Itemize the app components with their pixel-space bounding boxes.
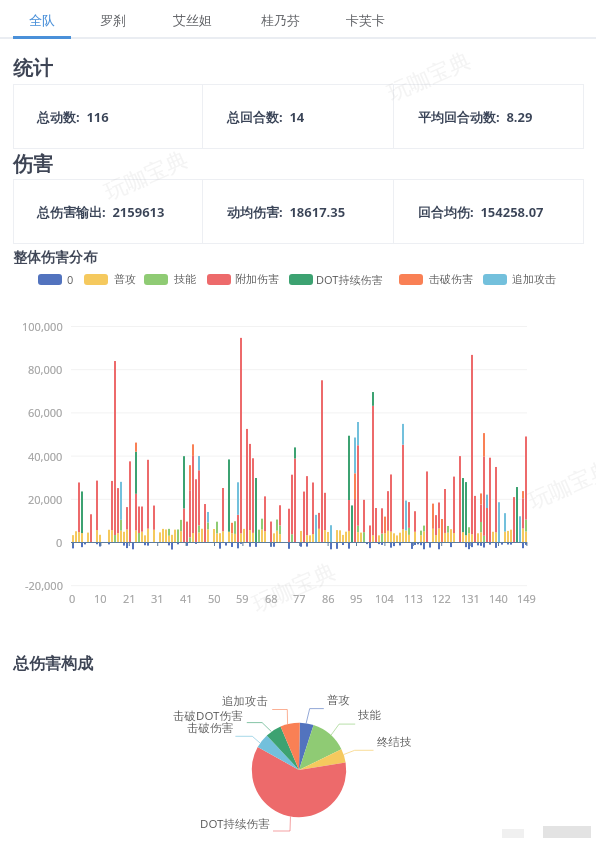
button[interactable]: 普攻 <box>84 271 136 287</box>
staticText: 总回合数: 14 <box>227 108 305 126</box>
staticText: 40,000 <box>28 449 63 464</box>
staticText: 艾丝妲 <box>173 12 212 28</box>
staticText: 追加攻击 <box>512 272 556 286</box>
staticText: 0 <box>56 535 63 550</box>
staticText: 100,000 <box>22 319 63 334</box>
staticText: 50 <box>208 591 221 606</box>
button[interactable]: 总动数: 116 <box>13 84 202 149</box>
staticText: 回合均伤: 154258.07 <box>418 203 544 221</box>
staticText: -20,000 <box>25 578 63 593</box>
staticText: 77 <box>293 591 306 606</box>
button[interactable]: 桂乃芬 <box>249 4 312 36</box>
staticText: 追加攻击 <box>222 694 268 708</box>
staticText: 玩咖宝典 <box>100 145 190 203</box>
staticText: 伤害 <box>13 152 53 177</box>
staticText: 罗刹 <box>100 12 126 28</box>
staticText: 0 <box>67 272 74 287</box>
staticText: 68 <box>265 591 278 606</box>
button[interactable]: 总伤害输出: 2159613 <box>13 179 202 244</box>
staticText: 桂乃芬 <box>261 12 300 28</box>
staticText: 玩咖宝典 <box>383 46 473 104</box>
button[interactable]: 平均回合动数: 8.29 <box>394 84 584 149</box>
staticText: 149 <box>517 591 536 606</box>
staticText: 21 <box>123 591 136 606</box>
staticText: 击破伤害 <box>187 721 233 735</box>
staticText: 整体伤害分布 <box>13 249 97 267</box>
staticText: 附加伤害 <box>235 272 279 286</box>
staticText: DOT持续伤害 <box>200 816 270 832</box>
staticText: 86 <box>322 591 335 606</box>
staticText: 玩咖宝典 <box>248 557 338 615</box>
staticText: 击破DOT伤害 <box>173 708 243 724</box>
staticText: 104 <box>375 591 394 606</box>
staticText: 全队 <box>29 12 55 28</box>
button[interactable]: 技能 <box>144 271 196 287</box>
staticText: 动均伤害: 18617.35 <box>227 203 346 221</box>
staticText: DOT持续伤害 <box>316 272 383 287</box>
button[interactable]: 罗刹 <box>88 4 138 36</box>
staticText: 80,000 <box>28 362 63 377</box>
staticText: 0 <box>69 591 76 606</box>
staticText: 终结技 <box>377 735 412 749</box>
button[interactable]: DOT持续伤害 <box>289 271 383 287</box>
staticText: 卡芙卡 <box>346 12 385 28</box>
staticText: 131 <box>461 591 480 606</box>
staticText: 20,000 <box>28 492 63 507</box>
button[interactable]: 回合均伤: 154258.07 <box>394 179 584 244</box>
staticText: 140 <box>489 591 508 606</box>
staticText: 59 <box>236 591 249 606</box>
staticText: 击破伤害 <box>429 272 473 286</box>
staticText: 60,000 <box>28 405 63 420</box>
staticText: 总动数: 116 <box>37 108 109 126</box>
button[interactable]: 卡芙卡 <box>334 4 397 36</box>
staticText: 普攻 <box>114 272 136 286</box>
button[interactable]: 艾丝妲 <box>161 4 224 36</box>
staticText: 普攻 <box>327 693 350 707</box>
staticText: 95 <box>350 591 363 606</box>
button[interactable]: 击破伤害 <box>399 271 473 287</box>
staticText: 技能 <box>358 708 381 722</box>
button[interactable]: 0 <box>38 271 74 287</box>
staticText: 总伤害构成 <box>13 654 93 674</box>
button[interactable]: 附加伤害 <box>207 271 279 287</box>
button[interactable]: 全队 <box>17 4 67 36</box>
staticText: 统计 <box>13 56 53 81</box>
staticText: 总伤害输出: 2159613 <box>37 203 165 221</box>
button[interactable]: 追加攻击 <box>483 271 556 287</box>
staticText: 平均回合动数: 8.29 <box>418 108 533 126</box>
staticText: 41 <box>180 591 193 606</box>
staticText: 122 <box>432 591 451 606</box>
staticText: 技能 <box>174 272 196 286</box>
staticText: 玩咖宝典 <box>524 454 596 512</box>
staticText: 10 <box>94 591 107 606</box>
button[interactable]: 总回合数: 14 <box>203 84 393 149</box>
staticText: 113 <box>404 591 423 606</box>
button[interactable]: 动均伤害: 18617.35 <box>203 179 393 244</box>
staticText: 31 <box>151 591 164 606</box>
